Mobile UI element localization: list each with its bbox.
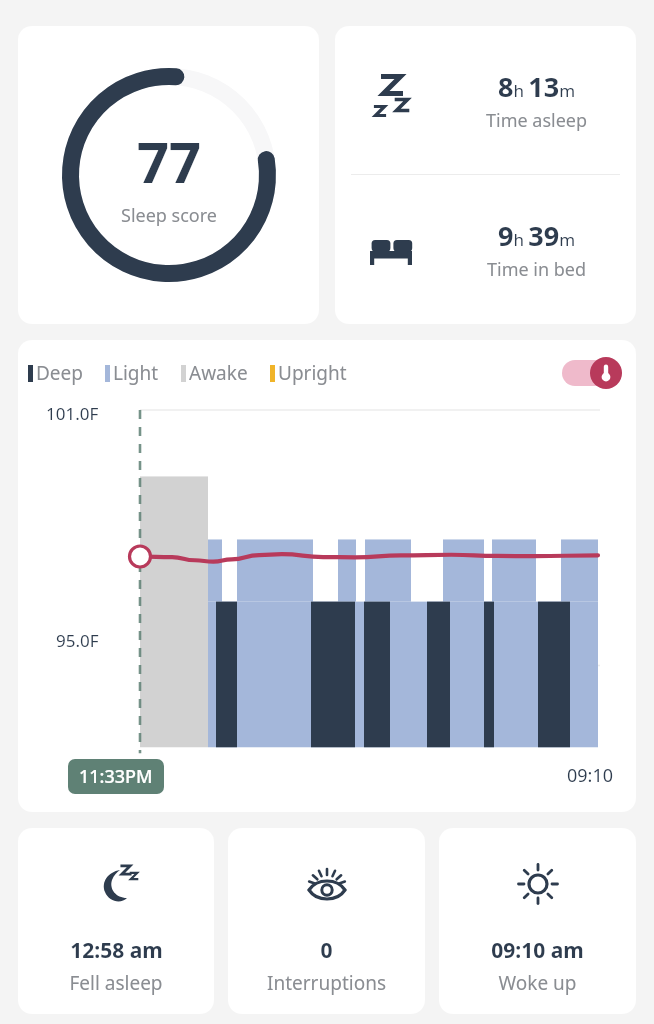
- button[interactable]: Toggle temperature: [562, 358, 622, 388]
- staticText: 12:58 am: [70, 936, 163, 965]
- staticText: Light: [113, 360, 159, 386]
- staticText: Interruptions: [267, 970, 386, 996]
- button[interactable]: 12:58 am: [18, 828, 214, 1014]
- button[interactable]: Upright: [270, 360, 347, 386]
- staticText: 0: [320, 936, 333, 965]
- button[interactable]: 8h 13m: [335, 26, 636, 324]
- staticText: 09:10 am: [491, 936, 584, 965]
- staticText: Fell asleep: [69, 970, 163, 996]
- button[interactable]: 11:33PM: [79, 764, 153, 789]
- button[interactable]: 09:10 am: [439, 828, 636, 1014]
- staticText: Time asleep: [486, 108, 588, 133]
- staticText: 101.0F: [46, 402, 99, 425]
- button[interactable]: Awake: [181, 360, 248, 386]
- staticText: 77: [137, 123, 202, 199]
- button[interactable]: 0: [228, 828, 425, 1014]
- staticText: Woke up: [498, 970, 577, 996]
- staticText: 09:10: [567, 763, 614, 788]
- staticText: 11:33PM: [79, 764, 153, 789]
- staticText: Awake: [189, 360, 248, 386]
- staticText: Upright: [278, 360, 347, 386]
- button[interactable]: 77: [18, 26, 319, 324]
- staticText: Time in bed: [487, 257, 587, 282]
- staticText: 9h 39m: [498, 217, 576, 254]
- staticText: 8h 13m: [498, 68, 576, 105]
- button[interactable]: Light: [105, 360, 159, 386]
- staticText: 95.0F: [56, 629, 99, 652]
- staticText: Deep: [36, 360, 83, 386]
- staticText: Sleep score: [121, 203, 217, 228]
- button[interactable]: Deep: [28, 360, 83, 386]
